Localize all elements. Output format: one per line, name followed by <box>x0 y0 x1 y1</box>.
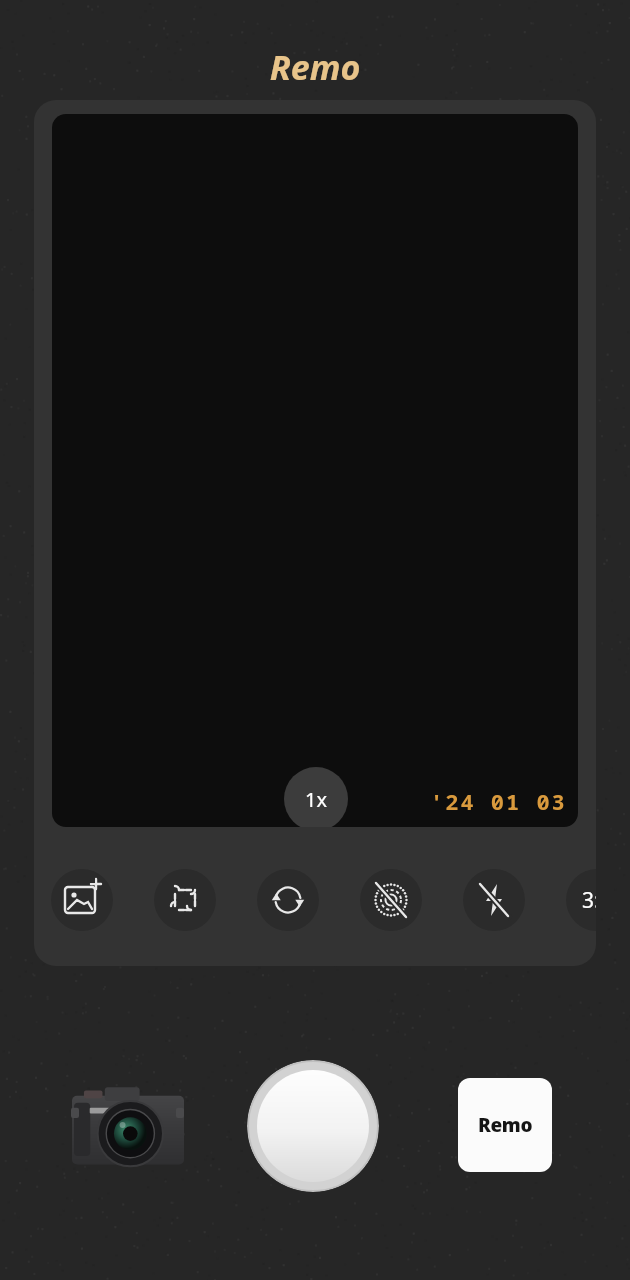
button[interactable]: 1x <box>284 767 348 827</box>
button[interactable]: Flash off <box>463 869 525 931</box>
button[interactable]: Switch camera <box>257 869 319 931</box>
button[interactable]: Camera model <box>70 1082 186 1168</box>
button[interactable]: Framing guide <box>154 869 216 931</box>
staticText: '24 01 03 <box>430 786 567 816</box>
button[interactable]: 3:4 <box>566 869 596 931</box>
button[interactable]: Shutter <box>247 1060 379 1192</box>
button[interactable]: Remo <box>458 1078 552 1172</box>
staticText: Remo <box>478 1112 533 1138</box>
button[interactable]: Add photo <box>51 869 113 931</box>
staticText: Remo <box>0 44 630 1280</box>
button[interactable]: Timer off <box>360 869 422 931</box>
staticText: 3:4 <box>582 886 596 915</box>
staticText: 1x <box>305 786 328 813</box>
